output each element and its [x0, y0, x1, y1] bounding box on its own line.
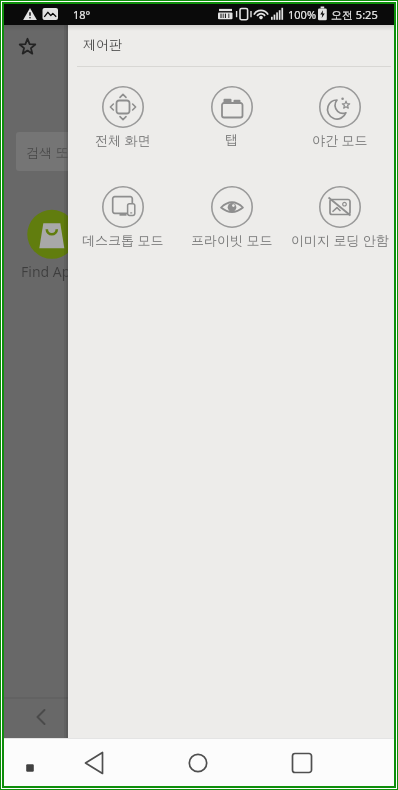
button[interactable]: 데스크톱 모드	[68, 186, 177, 249]
staticText: 18°	[73, 7, 91, 22]
staticText: 야간 모드	[312, 131, 368, 149]
button[interactable]	[27, 703, 55, 731]
staticText: 탭	[225, 131, 238, 147]
button[interactable]	[16, 132, 68, 171]
button[interactable]	[181, 746, 215, 780]
button[interactable]	[78, 746, 112, 780]
button[interactable]	[22, 760, 38, 776]
staticText: 데스크톱 모드	[82, 231, 164, 249]
staticText: 프라이빗 모드	[191, 231, 273, 249]
staticText: 오전 5:25	[331, 7, 378, 22]
button[interactable]: 이미지 로딩 안함	[285, 186, 394, 249]
staticText: 이미지 로딩 안함	[291, 231, 389, 249]
staticText: 100%	[288, 7, 317, 22]
staticText: Find App	[21, 262, 68, 281]
button[interactable]: 야간 모드	[285, 86, 394, 149]
button[interactable]	[285, 746, 319, 780]
staticText: 전체 화면	[95, 131, 151, 149]
button[interactable]: 탭	[177, 86, 286, 147]
button[interactable]	[27, 210, 68, 259]
staticText: 검색 또는	[26, 143, 68, 161]
staticText: 제어판	[83, 36, 122, 52]
button[interactable]: 프라이빗 모드	[177, 186, 286, 249]
button[interactable]: 전체 화면	[68, 86, 177, 149]
